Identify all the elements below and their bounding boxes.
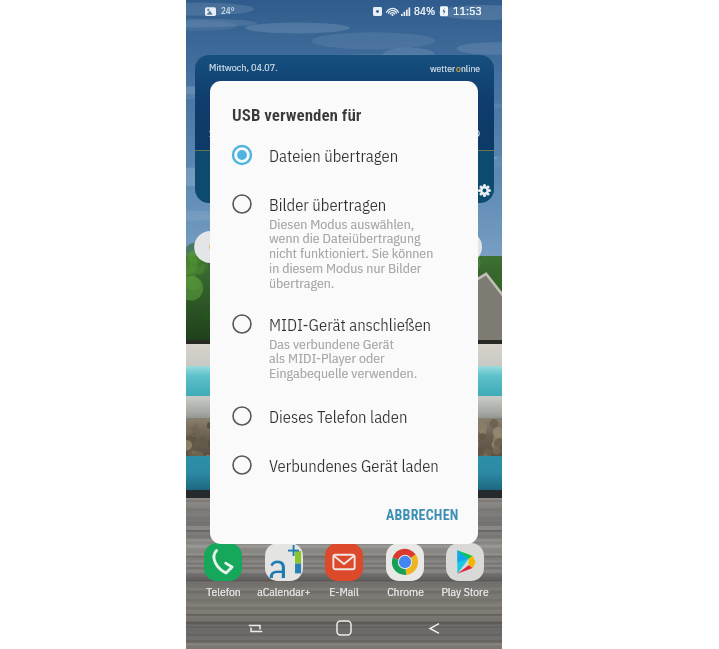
button[interactable]: Verbundenes Gerät laden xyxy=(210,449,478,483)
button[interactable]: ABBRECHEN xyxy=(374,498,471,532)
staticText: 24° xyxy=(221,5,235,17)
button[interactable]: Bilder übertragen xyxy=(210,188,478,297)
button[interactable]: MIDI-Gerät anschließen xyxy=(210,308,478,387)
staticText: S xyxy=(209,125,216,142)
staticText: a xyxy=(268,540,289,578)
button[interactable]: E-Mail xyxy=(315,540,373,598)
button[interactable]: Recents xyxy=(234,607,276,649)
staticText: Bilder übertragen xyxy=(269,194,387,215)
button[interactable]: Chrome xyxy=(376,540,434,598)
staticText: Play Store xyxy=(441,584,489,598)
staticText: o xyxy=(456,62,461,74)
staticText: Dieses Telefon laden xyxy=(269,406,408,427)
staticText: Verbundenes Gerät laden xyxy=(269,455,439,476)
staticText: Dateien übertragen xyxy=(269,145,399,166)
staticText: aCalendar+ xyxy=(257,584,311,598)
button[interactable]: Dateien übertragen xyxy=(210,139,478,173)
staticText: Chrome xyxy=(387,584,424,598)
staticText: 11:53 xyxy=(453,3,483,19)
button[interactable]: a xyxy=(255,540,313,598)
staticText: nline xyxy=(461,62,480,74)
button[interactable]: Dieses Telefon laden xyxy=(210,400,478,434)
staticText: wetter xyxy=(430,62,456,74)
staticText: 84% xyxy=(414,4,436,18)
staticText: USB verwenden für xyxy=(232,105,362,125)
button[interactable]: Home xyxy=(323,607,365,649)
staticText: E-Mail xyxy=(329,584,359,598)
button[interactable]: Play Store xyxy=(436,540,494,598)
button[interactable]: Mittwoch, 04.07. xyxy=(195,55,494,203)
button[interactable]: Telefon xyxy=(194,540,252,598)
staticText: ABBRECHEN xyxy=(386,507,459,523)
button[interactable]: Back xyxy=(413,607,455,649)
staticText: Telefon xyxy=(206,584,241,598)
staticText: Das verbundene Gerät als MIDI-Player ode… xyxy=(269,335,418,382)
staticText: MIDI-Gerät anschließen xyxy=(269,314,432,335)
staticText: Diesen Modus auswählen, wenn die Dateiüb… xyxy=(269,215,434,292)
staticText: Mittwoch, 04.07. xyxy=(209,61,278,74)
